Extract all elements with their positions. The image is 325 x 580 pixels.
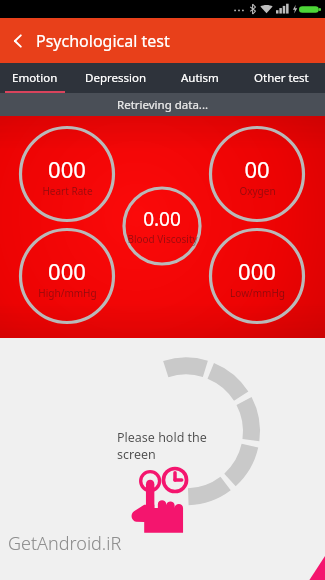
staticText: Heart Rate bbox=[42, 184, 93, 198]
staticText: Blood Viscosity bbox=[127, 232, 198, 246]
staticText: Retrieving data... bbox=[117, 97, 209, 113]
staticText: Low/mmHg bbox=[230, 286, 285, 300]
staticText: GetAndroid.iR bbox=[8, 531, 122, 556]
staticText: 0.00 bbox=[143, 206, 181, 232]
button[interactable]: Back bbox=[0, 23, 36, 59]
staticText: screen bbox=[117, 446, 156, 463]
staticText: High/mmHg bbox=[38, 286, 97, 300]
staticText: 00 bbox=[244, 154, 270, 184]
button[interactable]: Emotion bbox=[0, 63, 70, 93]
staticText: 000 bbox=[238, 256, 276, 286]
staticText: Please hold the bbox=[117, 429, 207, 446]
staticText: 000 bbox=[48, 256, 86, 286]
button[interactable]: Hold the screen bbox=[126, 466, 196, 536]
staticText: Other test bbox=[254, 70, 309, 86]
button[interactable]: Autism bbox=[162, 63, 237, 93]
button[interactable]: Depression bbox=[70, 63, 162, 93]
staticText: Emotion bbox=[12, 70, 58, 86]
staticText: Autism bbox=[181, 70, 219, 86]
staticText: Depression bbox=[85, 70, 147, 86]
staticText: Psychological test bbox=[36, 30, 170, 52]
button[interactable]: Other test bbox=[237, 63, 325, 93]
staticText: 000 bbox=[48, 154, 86, 184]
staticText: Oxygen bbox=[239, 184, 276, 198]
